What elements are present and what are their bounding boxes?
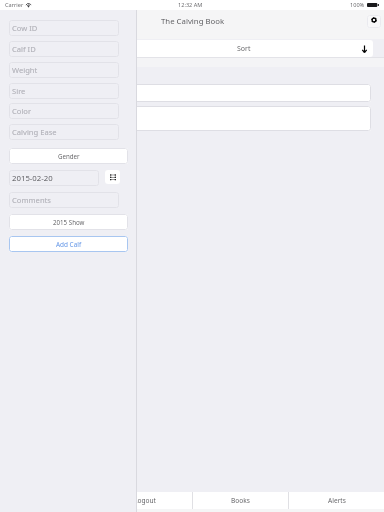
button[interactable] bbox=[0, 106, 371, 131]
staticText: Weight bbox=[12, 65, 38, 75]
button[interactable]: Calf ID bbox=[9, 41, 119, 57]
staticText: 2015-02-20 bbox=[12, 173, 53, 184]
staticText: Cow ID bbox=[12, 23, 38, 33]
staticText: The Calving Book bbox=[161, 16, 225, 27]
staticText: Comments bbox=[12, 195, 51, 205]
button[interactable]: Calving Ease bbox=[9, 124, 119, 140]
staticText: Alerts bbox=[328, 496, 346, 505]
staticText: Sort bbox=[237, 44, 251, 54]
staticText: 100% bbox=[350, 1, 365, 9]
staticText: Add Calf bbox=[56, 240, 82, 249]
staticText: Calving Ease bbox=[12, 127, 57, 137]
button[interactable]: Books bbox=[193, 492, 288, 509]
staticText: Books bbox=[231, 496, 250, 505]
button[interactable]: Cow ID bbox=[9, 20, 119, 36]
button[interactable]: Add Calf bbox=[9, 236, 128, 252]
button[interactable]: Logout bbox=[97, 492, 192, 509]
staticText: Color bbox=[12, 106, 32, 116]
button[interactable]: Sire bbox=[9, 83, 119, 99]
button[interactable]: Alerts bbox=[289, 492, 384, 509]
staticText: Calf ID bbox=[12, 44, 36, 54]
button[interactable]: 2015-02-20 bbox=[9, 170, 99, 186]
staticText: 2015 Show bbox=[53, 218, 85, 226]
staticText: Carrier bbox=[5, 1, 24, 9]
button[interactable]: Sort bbox=[0, 40, 373, 57]
button[interactable]: Comments bbox=[9, 192, 119, 208]
button[interactable] bbox=[0, 84, 371, 102]
button[interactable]: Weight bbox=[9, 62, 119, 78]
button[interactable]: Gender bbox=[9, 148, 128, 164]
staticText: Sire bbox=[12, 86, 26, 96]
button[interactable]: Pick date bbox=[105, 170, 120, 184]
button[interactable]: 2015 Show bbox=[9, 214, 128, 230]
button[interactable]: Settings bbox=[367, 15, 381, 28]
staticText: 12:32 AM bbox=[178, 1, 203, 9]
staticText: Logout bbox=[134, 496, 156, 505]
staticText: Gender bbox=[58, 152, 80, 160]
button[interactable]: Color bbox=[9, 103, 119, 119]
